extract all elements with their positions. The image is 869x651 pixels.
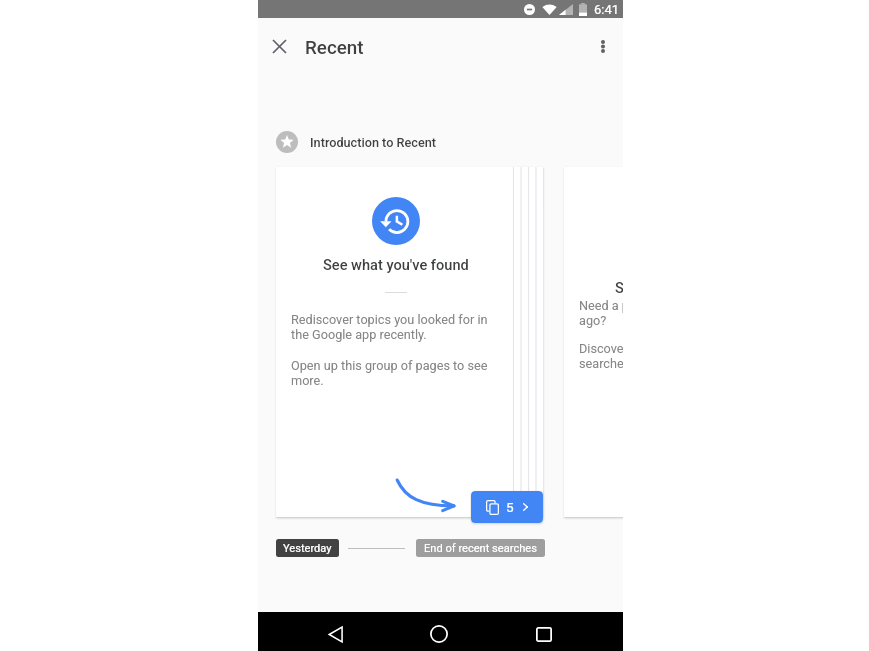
button[interactable]: Introduction to Recent: [276, 125, 437, 159]
button[interactable]: Back: [313, 617, 357, 651]
button[interactable]: More options: [583, 26, 623, 66]
button[interactable]: Close: [259, 26, 299, 66]
staticText: Introduction to Recent: [310, 135, 437, 150]
button[interactable]: Home: [417, 617, 461, 651]
button[interactable]: 5: [471, 491, 543, 523]
staticText: Need a page you saw a while ago?: [579, 298, 623, 328]
staticText: See what you've found: [323, 256, 469, 273]
staticText: End of recent searches: [424, 542, 537, 555]
staticText: 5: [506, 499, 514, 515]
staticText: Discover your recent searches here.: [579, 341, 623, 371]
button[interactable]: Yesterday: [276, 539, 339, 557]
staticText: Open up this group of pages to see more.: [291, 358, 496, 388]
button[interactable]: Search what you saw: [564, 167, 623, 517]
staticText: 6:41: [594, 2, 620, 17]
staticText: Rediscover topics you looked for in the …: [291, 312, 496, 342]
staticText: Yesterday: [283, 542, 332, 555]
staticText: Search what you saw: [615, 279, 623, 296]
button[interactable]: End of recent searches: [416, 539, 545, 557]
staticText: Recent: [305, 37, 364, 59]
button[interactable]: See what you've found: [276, 167, 543, 517]
button[interactable]: Recent apps: [522, 617, 566, 651]
